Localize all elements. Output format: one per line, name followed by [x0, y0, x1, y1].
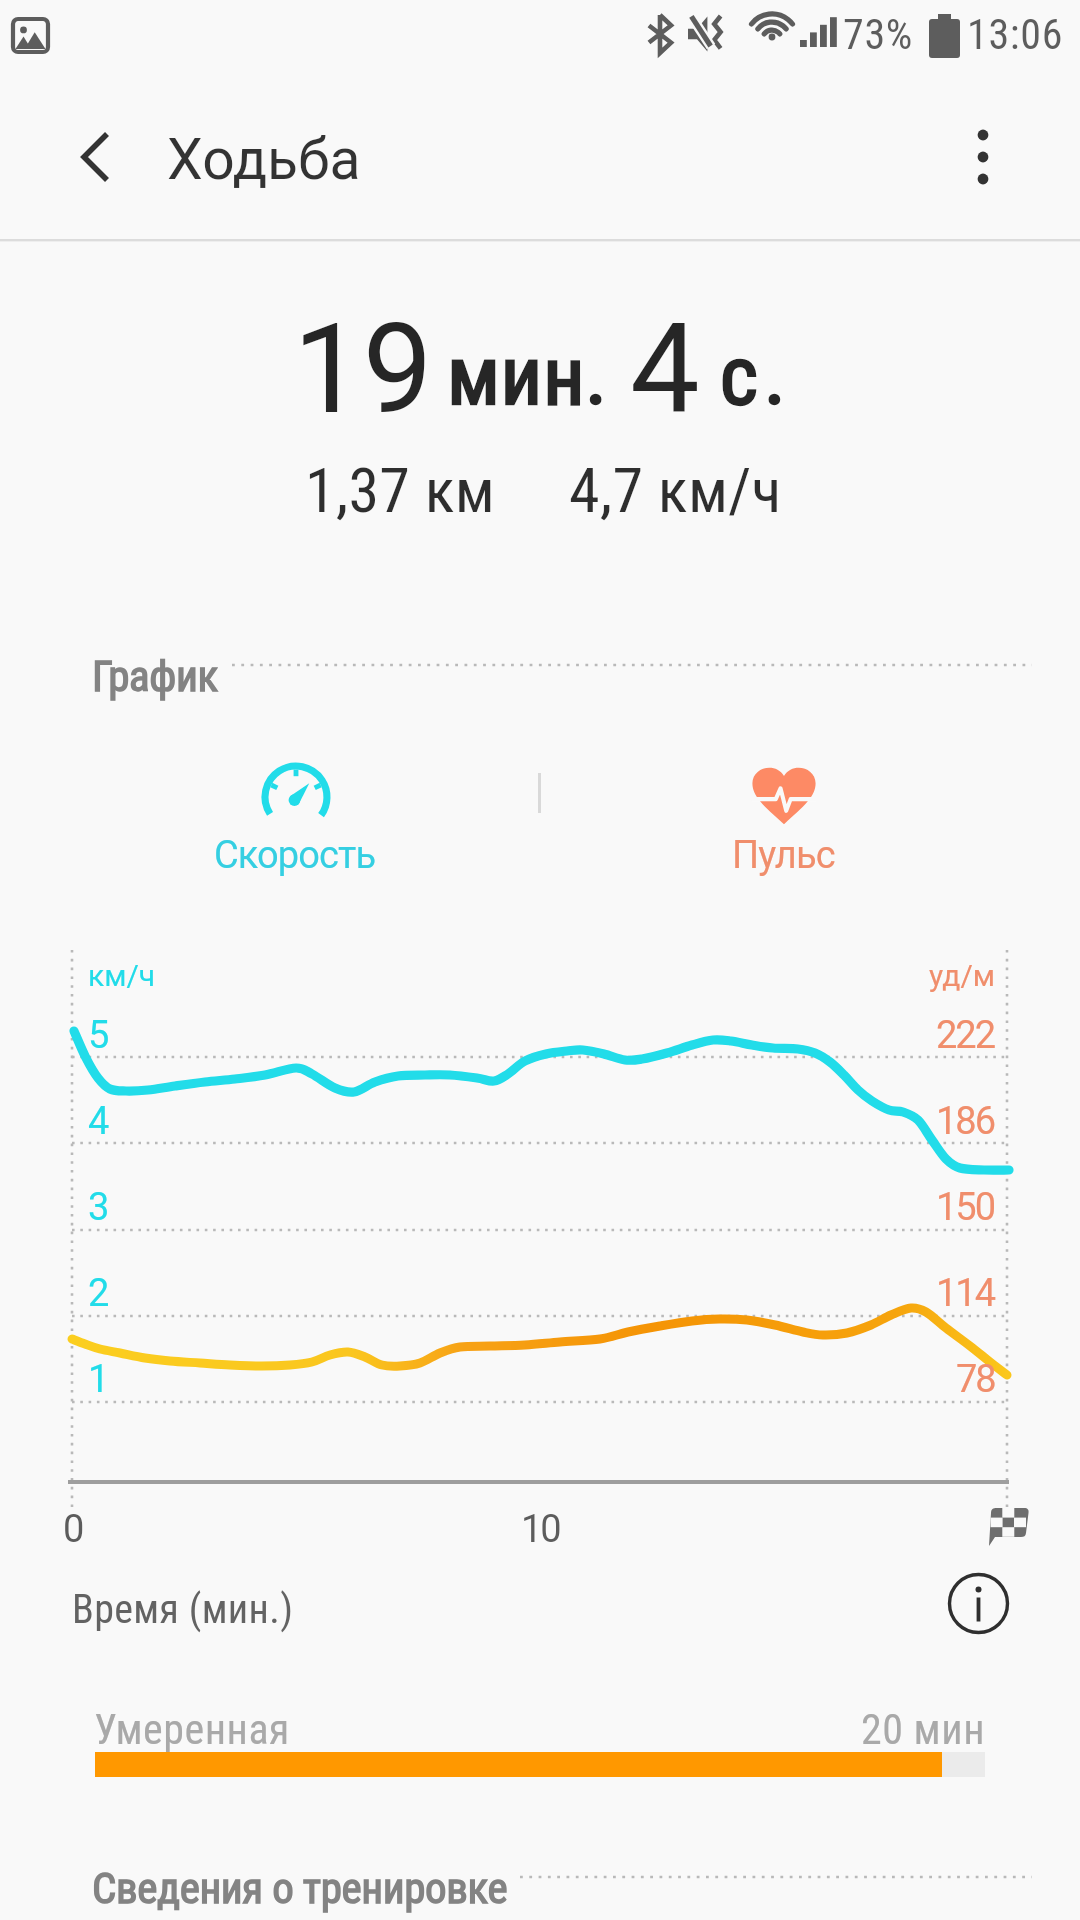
staticText: 0: [63, 1507, 83, 1552]
staticText: 20 мин: [861, 1705, 985, 1754]
staticText: уд/м: [929, 958, 996, 993]
staticText: Пульс: [732, 833, 835, 878]
staticText: 3: [88, 1185, 108, 1230]
staticText: 150: [936, 1185, 995, 1230]
staticText: 4,7 км/ч: [569, 454, 782, 527]
staticText: 19: [293, 297, 433, 442]
staticText: 1,37 км: [305, 454, 496, 527]
staticText: 1: [88, 1357, 108, 1402]
button[interactable]: Information: [946, 1571, 1011, 1636]
staticText: с.: [720, 328, 792, 424]
staticText: 4: [88, 1099, 108, 1144]
staticText: 186: [936, 1099, 995, 1144]
button[interactable]: More options: [948, 122, 1018, 192]
staticText: 5: [88, 1013, 108, 1058]
staticText: Умеренная: [94, 1705, 290, 1754]
staticText: График: [92, 651, 218, 701]
staticText: 73%: [843, 10, 914, 59]
staticText: Скорость: [214, 833, 376, 878]
staticText: 4: [630, 297, 700, 442]
staticText: 13:06: [967, 10, 1064, 59]
staticText: Сведения о тренировке: [92, 1863, 508, 1913]
staticText: 10: [521, 1507, 560, 1552]
staticText: мин.: [447, 328, 608, 424]
staticText: 2: [88, 1271, 108, 1316]
staticText: 78: [956, 1357, 995, 1402]
button[interactable]: Back: [63, 122, 133, 192]
staticText: Время (мин.): [72, 1586, 294, 1633]
button[interactable]: Скорость: [155, 740, 437, 888]
staticText: Ходьба: [167, 126, 361, 193]
button[interactable]: Пульс: [643, 740, 925, 888]
staticText: 114: [936, 1271, 995, 1316]
staticText: км/ч: [88, 958, 156, 993]
staticText: 222: [936, 1013, 995, 1058]
